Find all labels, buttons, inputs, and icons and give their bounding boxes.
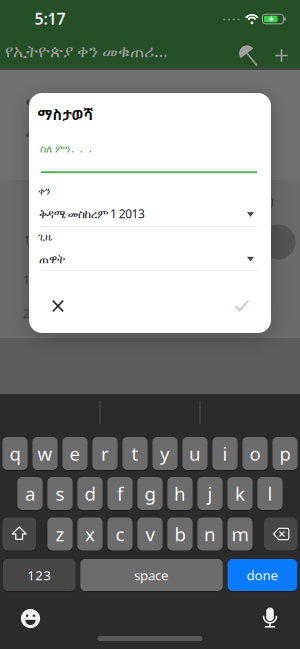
staticText: x xyxy=(85,522,95,546)
staticText: e xyxy=(69,441,80,466)
button[interactable]: x xyxy=(77,517,103,550)
button[interactable]: n xyxy=(197,517,223,550)
button[interactable]: done xyxy=(228,559,297,591)
staticText: c xyxy=(115,522,124,546)
staticText: b xyxy=(174,522,185,546)
staticText: i xyxy=(222,441,227,466)
staticText: ) xyxy=(270,193,274,209)
staticText: k xyxy=(235,481,245,506)
button[interactable]: space xyxy=(80,559,223,591)
button[interactable]: q xyxy=(2,437,28,470)
button[interactable]: 123 xyxy=(3,559,75,591)
button[interactable]: g xyxy=(137,477,163,510)
staticText: f xyxy=(117,481,123,506)
button[interactable]: f xyxy=(107,477,133,510)
staticText: 2 xyxy=(23,305,30,321)
staticText: m xyxy=(231,522,248,546)
button[interactable]: e xyxy=(62,437,88,470)
staticText: g xyxy=(144,481,155,506)
button[interactable]: m xyxy=(227,517,253,550)
staticText: q xyxy=(9,441,20,466)
button[interactable]: t xyxy=(122,437,148,470)
button[interactable]: i xyxy=(212,437,238,470)
staticText: 1 xyxy=(23,232,30,248)
button[interactable]: Delete xyxy=(264,517,298,550)
button[interactable]: Date xyxy=(41,199,257,229)
staticText: j xyxy=(207,481,212,506)
staticText: d xyxy=(84,481,95,506)
staticText: ʻ xyxy=(25,128,28,148)
staticText: ስለ ምን. . . xyxy=(40,141,92,155)
staticText: a xyxy=(25,481,35,506)
staticText: y xyxy=(160,441,170,466)
button[interactable]: s xyxy=(47,477,73,510)
staticText: u xyxy=(189,441,201,466)
staticText: የኢትዮጵያ ቀን መቁጠሪያ እና ... xyxy=(5,39,173,62)
button[interactable]: Save xyxy=(227,290,257,320)
staticText: r xyxy=(101,441,109,466)
button[interactable]: u xyxy=(182,437,208,470)
button[interactable]: o xyxy=(242,437,268,470)
staticText: 5:17 xyxy=(34,8,65,29)
staticText: n xyxy=(204,522,216,546)
button[interactable]: Note text xyxy=(41,131,257,175)
staticText: ቅዳሜ መስከረም 1 2013 xyxy=(39,206,145,222)
staticText: ማስታወሻ xyxy=(37,105,93,124)
staticText: w xyxy=(37,441,52,466)
button[interactable]: j xyxy=(197,477,223,510)
button[interactable]: Emoji xyxy=(17,605,43,631)
button[interactable]: z xyxy=(47,517,73,550)
button[interactable]: Cancel xyxy=(43,291,73,321)
staticText: ጠዋት xyxy=(39,254,65,265)
button[interactable]: l xyxy=(257,477,283,510)
staticText: p xyxy=(279,441,290,466)
button[interactable]: Time xyxy=(41,244,257,274)
staticText: v xyxy=(145,522,154,546)
staticText: 1 xyxy=(23,272,30,288)
button[interactable]: Holidays xyxy=(232,41,262,71)
button[interactable]: Add xyxy=(266,40,296,70)
staticText: ቀን xyxy=(38,186,51,197)
button[interactable]: Dictation xyxy=(257,604,283,630)
staticText: t xyxy=(131,441,138,466)
button[interactable]: c xyxy=(107,517,133,550)
button[interactable]: p xyxy=(272,437,298,470)
button[interactable]: y xyxy=(152,437,178,470)
staticText: z xyxy=(55,522,64,546)
staticText: ጊዜ xyxy=(38,232,52,242)
staticText: ‹ xyxy=(25,92,30,110)
staticText: o xyxy=(249,441,260,466)
button[interactable]: d xyxy=(77,477,103,510)
staticText: done xyxy=(246,566,278,584)
staticText: s xyxy=(55,481,64,506)
button[interactable]: Shift xyxy=(2,517,36,550)
staticText: 123 xyxy=(27,566,51,584)
button[interactable]: w xyxy=(32,437,58,470)
staticText: h xyxy=(174,481,186,506)
button[interactable]: b xyxy=(167,517,193,550)
button[interactable]: h xyxy=(167,477,193,510)
button[interactable]: v xyxy=(137,517,163,550)
staticText: l xyxy=(267,481,272,506)
staticText: space xyxy=(134,566,169,584)
button[interactable]: a xyxy=(17,477,43,510)
button[interactable]: r xyxy=(92,437,118,470)
button[interactable]: k xyxy=(227,477,253,510)
